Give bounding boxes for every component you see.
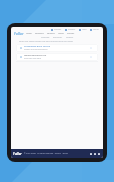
button[interactable]: Log in bbox=[90, 28, 99, 31]
staticText: Solutions bbox=[35, 32, 44, 35]
button[interactable]: Support bbox=[66, 36, 74, 39]
staticText: Services bbox=[47, 32, 55, 35]
button[interactable]: About bbox=[58, 32, 64, 35]
staticText: Guides and documentation bbox=[24, 48, 48, 51]
button[interactable]: Solutions bbox=[35, 32, 44, 35]
staticText: © 2024 Fuller. All rights reserved. Priv… bbox=[24, 152, 68, 155]
button[interactable]: Careers bbox=[65, 28, 76, 31]
staticText: Press kits and logos bbox=[24, 57, 42, 60]
button[interactable]: Social link bbox=[90, 153, 92, 155]
button[interactable]: Contact bbox=[67, 32, 75, 35]
staticText: Fuller bbox=[13, 152, 22, 156]
button[interactable]: Resources bbox=[53, 36, 63, 39]
button[interactable]: Social link bbox=[98, 153, 100, 155]
staticText: Contact bbox=[67, 32, 75, 35]
staticText: About bbox=[58, 32, 64, 35]
button[interactable]: Services bbox=[47, 32, 55, 35]
button[interactable]: Social link bbox=[94, 153, 96, 155]
staticText: Media Resources Kit bbox=[24, 54, 47, 57]
staticText: Support bbox=[66, 36, 74, 39]
staticText: Home bbox=[26, 32, 32, 35]
staticText: Resources bbox=[53, 36, 63, 39]
staticText: Contact bbox=[54, 28, 62, 31]
button[interactable]: Overview bbox=[41, 36, 50, 39]
staticText: Knowledge Base Centre bbox=[24, 45, 50, 48]
staticText: Overview bbox=[41, 36, 50, 39]
staticText: Help bbox=[82, 28, 87, 31]
button[interactable]: Contact bbox=[51, 28, 62, 31]
staticText: Select the option below that best matche… bbox=[19, 40, 73, 43]
button[interactable]: Knowledge Base Centre bbox=[16, 44, 98, 52]
button[interactable]: Help bbox=[79, 28, 87, 31]
button[interactable]: Media Resources Kit bbox=[16, 53, 98, 61]
button[interactable]: Fuller bbox=[14, 31, 24, 36]
staticText: Log in bbox=[93, 28, 99, 31]
staticText: Careers bbox=[68, 28, 76, 31]
button[interactable]: Home bbox=[26, 32, 32, 35]
staticText: Fuller bbox=[14, 31, 24, 36]
